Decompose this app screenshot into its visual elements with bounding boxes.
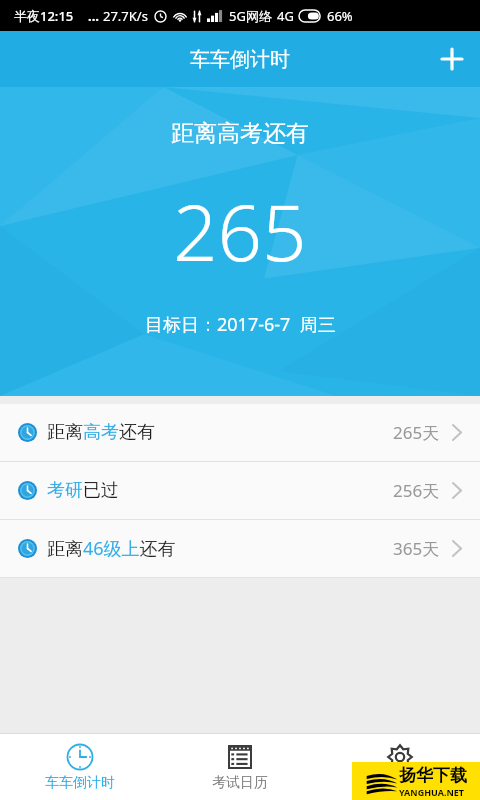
button[interactable]: 考试日历 [160, 734, 320, 800]
staticText: 车车倒计时 [45, 774, 115, 792]
staticText: ... [88, 7, 99, 25]
button[interactable]: 距离46级上还有 [0, 520, 480, 577]
staticText: 目标日：2017-6-7 周三 [145, 312, 336, 337]
staticText: 256天 [393, 479, 440, 502]
staticText: YANGHUA.NET [399, 786, 465, 798]
button[interactable]: 距离高考还有 [0, 404, 480, 461]
button[interactable]: 考研已过 [0, 462, 480, 519]
button[interactable]: Add countdown [424, 31, 480, 87]
staticText: 距离46级上还有 [47, 536, 176, 561]
staticText: 265 [173, 178, 307, 284]
staticText: 距离高考还有 [47, 421, 155, 444]
staticText: 27.7K/s [103, 7, 148, 25]
button[interactable]: 车车倒计时 [0, 734, 160, 800]
staticText: 半夜12:15 [14, 7, 74, 25]
staticText: 265天 [393, 421, 440, 444]
staticText: 设置 [386, 774, 414, 792]
staticText: 5G网络 [229, 7, 272, 25]
staticText: 66% [327, 7, 353, 25]
button[interactable]: 设置 [320, 734, 480, 800]
staticText: 365天 [393, 537, 440, 560]
staticText: 考试日历 [212, 774, 268, 792]
staticText: 扬华下载 [399, 765, 467, 786]
staticText: 距离高考还有 [171, 119, 309, 148]
staticText: 考研已过 [47, 479, 119, 502]
staticText: 4G [277, 7, 294, 25]
staticText: 车车倒计时 [190, 47, 290, 72]
